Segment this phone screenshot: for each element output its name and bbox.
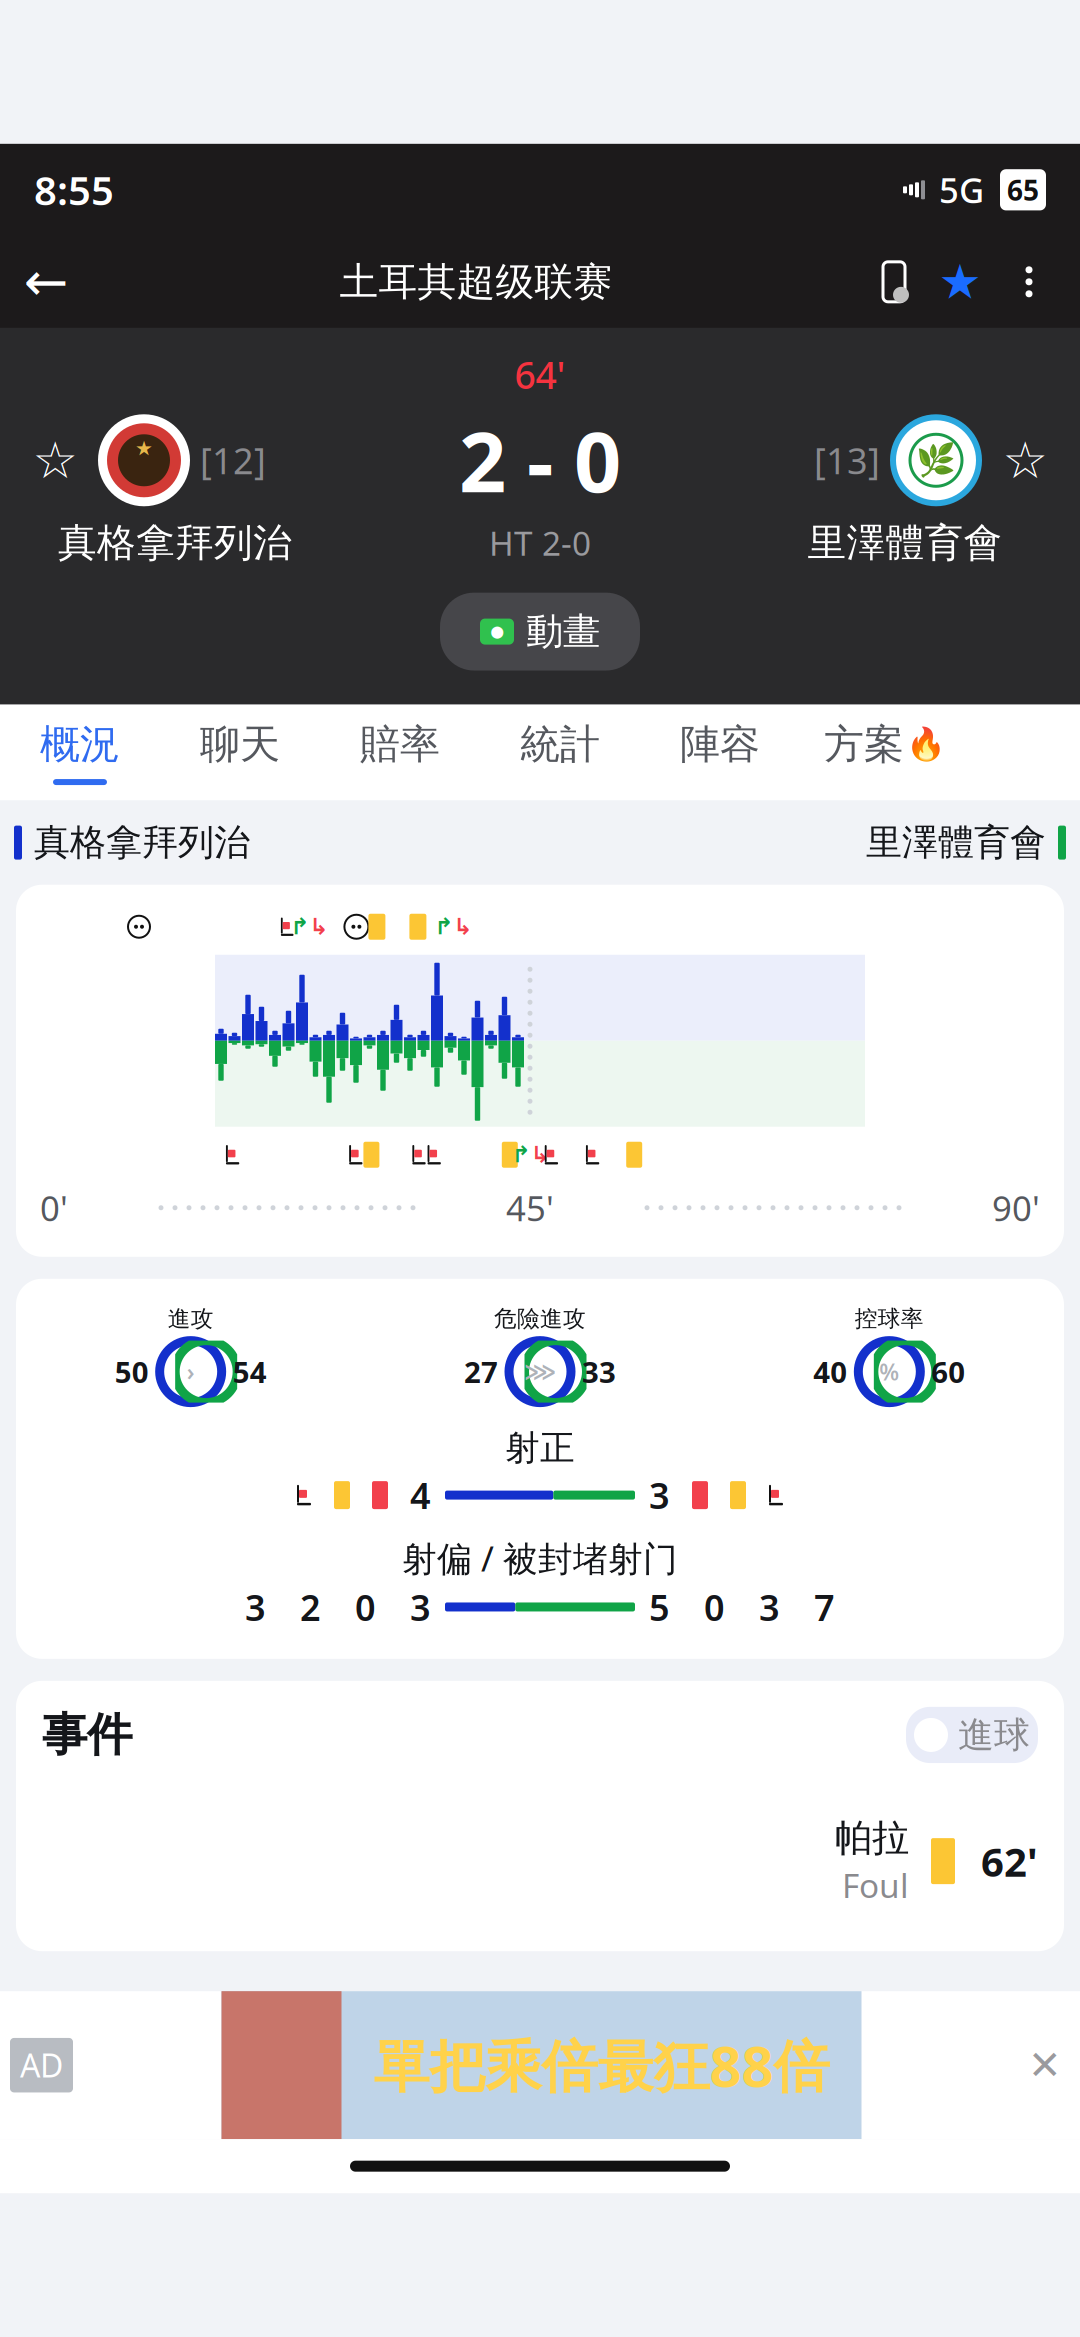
- button[interactable]: Notifications: [860, 236, 928, 328]
- staticText: 里澤體育會: [866, 820, 1046, 865]
- staticText: 單把乘倍最狂88倍: [373, 2028, 829, 2102]
- staticText: 62': [981, 1835, 1038, 1888]
- staticText: 里澤體育會: [807, 519, 1002, 567]
- button[interactable]: 賠率: [320, 704, 480, 800]
- staticText: 60: [931, 1352, 965, 1391]
- staticText: ✕: [1028, 2042, 1062, 2088]
- staticText: 0': [40, 1185, 68, 1231]
- button[interactable]: Back: [0, 236, 92, 328]
- staticText: ⬤: [490, 625, 503, 638]
- staticText: ★: [135, 437, 153, 460]
- staticText: ↱: [512, 1142, 531, 1168]
- button[interactable]: Close ad: [1010, 2030, 1080, 2100]
- staticText: AD: [20, 2044, 63, 2086]
- staticText: 8:55: [34, 163, 114, 216]
- staticText: 0: [355, 1583, 376, 1631]
- button[interactable]: 統計: [480, 704, 640, 800]
- staticText: 90': [992, 1185, 1040, 1231]
- staticText: ☆: [32, 431, 77, 489]
- staticText: 聊天: [200, 720, 280, 769]
- button[interactable]: 概況: [0, 704, 160, 800]
- staticText: 控球率: [855, 1305, 924, 1333]
- staticText: 真格拿拜列治: [34, 820, 250, 865]
- staticText: ⋙: [524, 1359, 556, 1384]
- staticText: 5: [649, 1583, 670, 1631]
- staticText: 3: [759, 1583, 780, 1631]
- button[interactable]: 陣容: [640, 704, 800, 800]
- staticText: 帕拉: [835, 1815, 909, 1861]
- staticText: HT 2-0: [489, 521, 591, 565]
- staticText: 54: [233, 1352, 267, 1391]
- staticText: 🌿: [916, 442, 956, 479]
- button[interactable]: Favorite: [928, 236, 992, 328]
- staticText: [12]: [200, 436, 266, 484]
- staticText: 動畫: [526, 609, 600, 655]
- staticText: %: [879, 1357, 899, 1387]
- staticText: ←: [23, 251, 68, 312]
- staticText: 65: [1007, 171, 1039, 208]
- button[interactable]: 方案: [800, 704, 970, 800]
- staticText: 真格拿拜列治: [58, 519, 292, 567]
- staticText: 方案: [824, 720, 904, 769]
- staticText: 3: [649, 1471, 670, 1519]
- staticText: 27: [464, 1352, 498, 1391]
- staticText: 40: [813, 1352, 847, 1391]
- staticText: 0: [704, 1583, 725, 1631]
- staticText: 概況: [40, 720, 120, 769]
- staticText: 進球: [958, 1713, 1030, 1757]
- staticText: 2 - 0: [459, 405, 621, 515]
- staticText: 射正: [505, 1427, 575, 1469]
- staticText: 事件: [42, 1707, 132, 1763]
- button[interactable]: 單把乘倍最狂88倍: [221, 1991, 861, 2139]
- staticText: 3: [245, 1583, 266, 1631]
- staticText: 2: [300, 1583, 321, 1631]
- staticText: 進攻: [168, 1305, 214, 1333]
- staticText: ★: [938, 255, 981, 309]
- staticText: 50: [115, 1352, 149, 1391]
- staticText: [13]: [814, 436, 880, 484]
- button[interactable]: 進球: [906, 1707, 1038, 1763]
- staticText: 3: [410, 1583, 431, 1631]
- staticText: 🔥: [906, 726, 946, 763]
- button[interactable]: Favorite home team: [12, 417, 98, 503]
- button[interactable]: More options: [992, 236, 1066, 328]
- staticText: ↳: [453, 914, 472, 940]
- staticText: 5G: [939, 167, 984, 213]
- staticText: 陣容: [680, 720, 760, 769]
- staticText: 危險進攻: [494, 1305, 586, 1333]
- staticText: 45': [506, 1185, 554, 1231]
- staticText: ↳: [309, 914, 328, 940]
- staticText: ›: [187, 1357, 195, 1387]
- staticText: 64': [514, 350, 565, 399]
- staticText: 土耳其超级联赛: [339, 258, 612, 306]
- staticText: 4: [410, 1471, 431, 1519]
- staticText: 賠率: [360, 720, 440, 769]
- button[interactable]: ⬤: [440, 593, 640, 671]
- staticText: Foul: [842, 1863, 909, 1907]
- staticText: 7: [814, 1583, 835, 1631]
- staticText: 射偏 / 被封堵射门: [402, 1535, 678, 1581]
- staticText: ↳: [531, 1142, 550, 1168]
- staticText: ☆: [1002, 431, 1047, 489]
- staticText: ↱: [290, 914, 309, 940]
- button[interactable]: Favorite away team: [982, 417, 1068, 503]
- staticText: ↱: [434, 914, 453, 940]
- button[interactable]: 聊天: [160, 704, 320, 800]
- staticText: 33: [582, 1352, 616, 1391]
- staticText: 統計: [520, 720, 600, 769]
